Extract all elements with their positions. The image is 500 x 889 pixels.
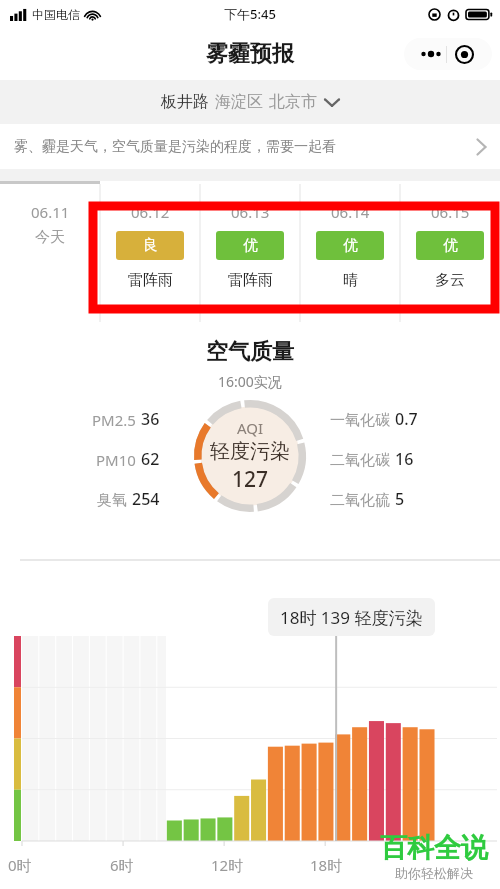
staticText: 06.11 [31, 202, 70, 222]
staticText: 雷阵雨 [228, 271, 273, 290]
button[interactable]: 18时 139 轻度污染 [268, 598, 435, 636]
staticText: 轻度污染 [210, 439, 290, 464]
staticText: 06.14 [331, 202, 370, 222]
staticText: AQI [237, 418, 264, 438]
staticText: 北京市 [269, 92, 317, 112]
staticText: 优 [343, 236, 358, 255]
staticText: 06.15 [431, 202, 470, 222]
button[interactable]: 板井路 [0, 80, 500, 124]
staticText: 良 [143, 236, 158, 255]
other: Close [447, 38, 481, 70]
staticText: 06.13 [231, 202, 270, 222]
staticText: 一氧化碳 [330, 411, 390, 430]
staticText: 16:00实况 [218, 372, 282, 391]
button[interactable]: More options [404, 38, 492, 70]
staticText: 12时 [211, 855, 244, 875]
staticText: 多云 [435, 271, 465, 290]
staticText: 18时 139 轻度污染 [280, 606, 423, 629]
staticText: 二氧化硫 [330, 491, 390, 510]
staticText: 雷阵雨 [128, 271, 173, 290]
staticText: 优 [443, 236, 458, 255]
other: More options [416, 39, 446, 69]
staticText: 127 [232, 465, 269, 494]
staticText: 臭氧 [97, 491, 127, 510]
staticText: 雾、霾是天气，空气质量是污染的程度，需要一起看 [14, 138, 477, 156]
button[interactable]: 06.13 [200, 184, 300, 322]
staticText: 下午5:45 [224, 5, 276, 23]
button[interactable]: 06.14 [300, 184, 400, 322]
button[interactable]: 06.12 [100, 184, 200, 322]
staticText: 16 [395, 448, 414, 470]
button[interactable]: 06.15 [400, 184, 500, 322]
staticText: 5 [395, 488, 405, 510]
staticText: 空气质量 [206, 338, 294, 366]
staticText: 中国电信 [32, 7, 80, 22]
staticText: 今天 [35, 228, 65, 247]
staticText: 百科全说 [380, 831, 488, 865]
staticText: 助你轻松解决 [395, 865, 473, 881]
staticText: 0时 [8, 855, 32, 875]
staticText: 雾霾预报 [206, 40, 294, 68]
staticText: 36 [141, 408, 160, 430]
staticText: 晴 [343, 271, 358, 290]
staticText: 海淀区 [215, 92, 263, 112]
staticText: PM2.5 [92, 410, 136, 430]
staticText: 18时 [310, 855, 343, 875]
button[interactable]: 雾、霾是天气，空气质量是污染的程度，需要一起看 [0, 124, 500, 169]
staticText: 62 [141, 448, 160, 470]
staticText: 优 [243, 236, 258, 255]
staticText: 0.7 [395, 408, 418, 430]
staticText: PM10 [96, 450, 136, 470]
staticText: 06.12 [131, 202, 170, 222]
button[interactable]: 06.11 [0, 184, 100, 322]
staticText: 板井路 [161, 92, 209, 112]
staticText: 6时 [110, 855, 134, 875]
staticText: 二氧化碳 [330, 451, 390, 470]
staticText: 254 [132, 488, 160, 510]
